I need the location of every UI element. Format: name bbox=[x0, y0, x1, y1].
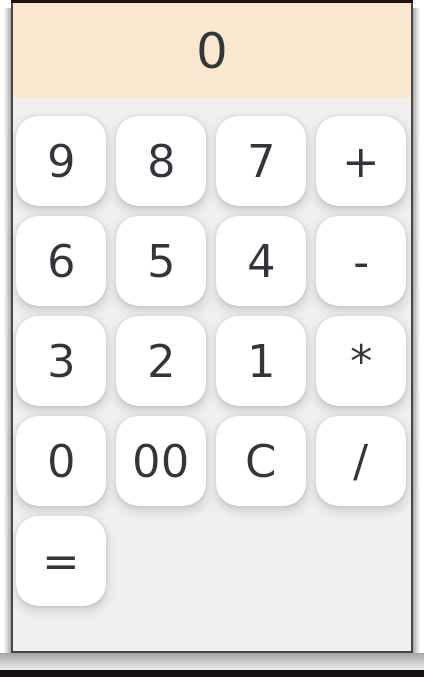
staticText: C bbox=[245, 435, 277, 487]
staticText: 8 bbox=[147, 135, 176, 187]
staticText: 0 bbox=[196, 22, 228, 80]
staticText: 2 bbox=[147, 335, 176, 387]
button[interactable]: 4 bbox=[216, 216, 306, 306]
button[interactable]: 6 bbox=[16, 216, 106, 306]
staticText: 4 bbox=[247, 235, 276, 287]
button[interactable]: 7 bbox=[216, 116, 306, 206]
button[interactable]: + bbox=[316, 116, 406, 206]
staticText: 00 bbox=[132, 435, 190, 487]
staticText: - bbox=[353, 235, 370, 287]
staticText: 9 bbox=[47, 135, 76, 187]
button[interactable]: 0 bbox=[16, 416, 106, 506]
button[interactable]: 1 bbox=[216, 316, 306, 406]
button[interactable]: 2 bbox=[116, 316, 206, 406]
staticText: 7 bbox=[247, 135, 276, 187]
staticText: + bbox=[342, 135, 380, 187]
button[interactable]: * bbox=[316, 316, 406, 406]
button[interactable]: 8 bbox=[116, 116, 206, 206]
staticText: 5 bbox=[147, 235, 176, 287]
button[interactable]: / bbox=[316, 416, 406, 506]
button[interactable]: - bbox=[316, 216, 406, 306]
button[interactable]: = bbox=[16, 516, 106, 606]
button[interactable]: 00 bbox=[116, 416, 206, 506]
button[interactable]: 5 bbox=[116, 216, 206, 306]
staticText: 1 bbox=[247, 335, 276, 387]
button[interactable]: C bbox=[216, 416, 306, 506]
staticText: 6 bbox=[47, 235, 76, 287]
staticText: 0 bbox=[47, 435, 76, 487]
button[interactable]: 3 bbox=[16, 316, 106, 406]
staticText: = bbox=[42, 535, 80, 587]
staticText: * bbox=[350, 335, 373, 387]
staticText: 3 bbox=[47, 335, 76, 387]
staticText: / bbox=[353, 435, 369, 487]
button[interactable]: 9 bbox=[16, 116, 106, 206]
